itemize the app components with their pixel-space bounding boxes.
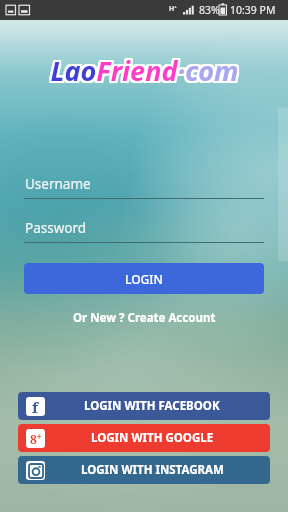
button[interactable]: LOGIN	[24, 263, 264, 294]
staticText: Password	[25, 219, 87, 237]
staticText: Or New ? Create Account	[73, 310, 216, 326]
button[interactable]: LOGIN WITH INSTAGRAM	[18, 456, 270, 484]
staticText: Username	[25, 175, 91, 193]
staticText: LOGIN WITH GOOGLE	[91, 430, 214, 446]
staticText: LaoFriend·com	[52, 52, 241, 89]
staticText: LaoFriend·com	[50, 54, 239, 91]
staticText: LOGIN	[125, 271, 163, 287]
button[interactable]: Or New ? Create Account	[65, 307, 224, 329]
staticText: 83%	[199, 3, 220, 17]
staticText: LaoFriend·com	[52, 50, 241, 87]
button[interactable]: 8⁺	[18, 424, 270, 452]
staticText: H⁺	[169, 4, 177, 14]
staticText: LaoFriend·com	[52, 54, 241, 91]
button[interactable]: f	[18, 392, 270, 420]
staticText: LaoFriend·com	[50, 52, 239, 89]
staticText: 10:39 PM	[230, 3, 276, 17]
staticText: LaoFriend·com	[48, 54, 237, 91]
button[interactable]: Password	[24, 219, 264, 243]
staticText: 8⁺	[30, 431, 42, 447]
staticText: LaoFriend·com	[48, 50, 237, 87]
staticText: LaoFriend·com	[48, 52, 237, 89]
staticText: LaoFriend·com	[50, 50, 239, 87]
button[interactable]: Username	[24, 175, 264, 199]
staticText: LOGIN WITH FACEBOOK	[84, 398, 220, 414]
staticText: f	[32, 397, 39, 416]
staticText: LOGIN WITH INSTAGRAM	[81, 462, 224, 478]
